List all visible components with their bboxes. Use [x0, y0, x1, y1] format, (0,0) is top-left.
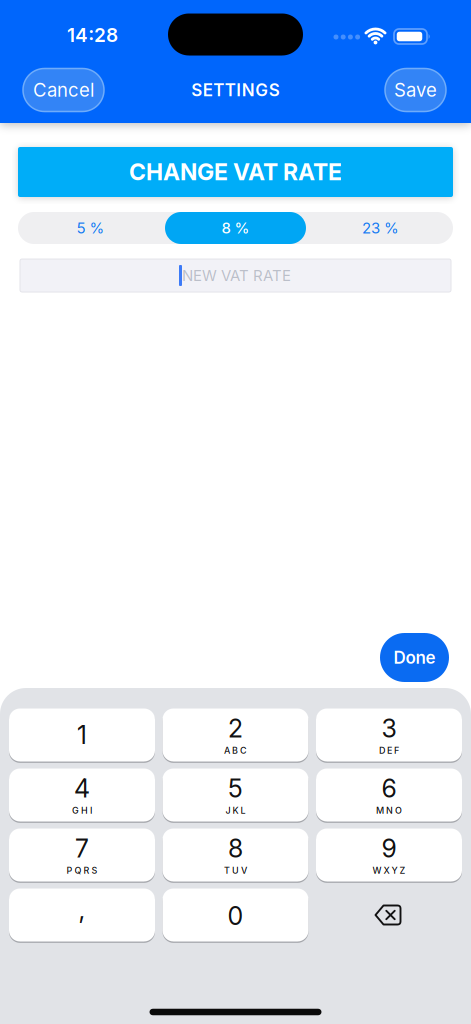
staticText: Save — [394, 79, 437, 101]
button[interactable]: Delete — [316, 888, 462, 941]
staticText: 14:28 — [67, 23, 118, 46]
staticText: 5 — [228, 773, 243, 804]
staticText: 3 — [381, 713, 396, 744]
button[interactable]: Save — [385, 68, 446, 111]
button[interactable]: 5 — [162, 768, 308, 821]
button[interactable]: 1 — [9, 708, 155, 761]
button[interactable]: 8 % — [165, 212, 306, 244]
button[interactable]: , — [9, 888, 155, 941]
staticText: M N O — [376, 805, 402, 816]
staticText: Done — [393, 647, 435, 668]
button[interactable]: 23 % — [310, 212, 451, 244]
button[interactable]: 4 — [9, 768, 155, 821]
staticText: 8 — [228, 833, 243, 864]
staticText: SETTINGS — [191, 80, 280, 100]
staticText: CHANGE VAT RATE — [129, 158, 342, 186]
button[interactable]: 0 — [162, 888, 308, 941]
button[interactable]: 3 — [316, 708, 462, 761]
staticText: , — [78, 895, 85, 925]
button[interactable]: 7 — [9, 828, 155, 881]
staticText: G H I — [72, 805, 92, 816]
staticText: J K L — [225, 805, 245, 816]
button[interactable]: Cancel — [23, 68, 104, 111]
button[interactable]: New VAT rate — [20, 259, 451, 292]
staticText: 6 — [381, 773, 396, 804]
staticText: Cancel — [33, 79, 94, 101]
staticText: A B C — [224, 745, 247, 756]
staticText: T U V — [224, 865, 247, 876]
button[interactable]: 6 — [316, 768, 462, 821]
staticText: 9 — [381, 833, 396, 864]
staticText: D E F — [379, 745, 399, 756]
button[interactable]: 9 — [316, 828, 462, 881]
staticText: 7 — [75, 833, 89, 864]
button[interactable]: 8 — [162, 828, 308, 881]
staticText: 8 % — [221, 219, 249, 237]
staticText: NEW VAT RATE — [182, 266, 291, 284]
staticText: 2 — [228, 713, 243, 744]
button[interactable]: 5 % — [20, 212, 161, 244]
staticText: W X Y Z — [372, 865, 405, 876]
staticText: 5 % — [76, 219, 104, 237]
staticText: 4 — [74, 773, 90, 804]
button[interactable]: 2 — [162, 708, 308, 761]
staticText: 1 — [77, 720, 87, 750]
staticText: 23 % — [362, 219, 399, 237]
button[interactable]: Done — [380, 633, 449, 682]
staticText: P Q R S — [66, 865, 97, 876]
staticText: 0 — [227, 901, 243, 931]
